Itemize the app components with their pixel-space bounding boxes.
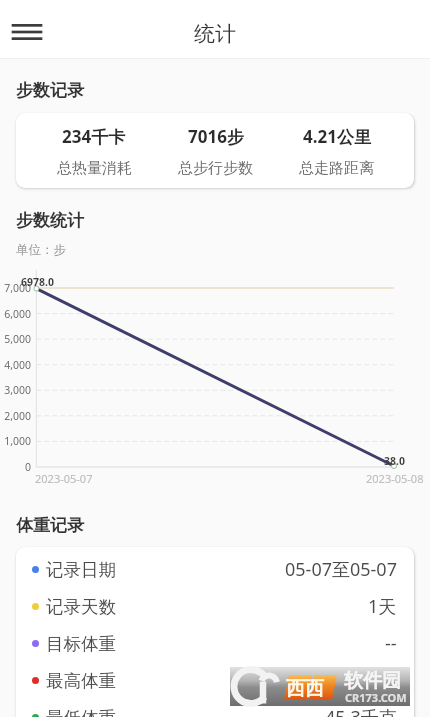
staticText: 05-07至05-07: [285, 557, 397, 582]
staticText: 单位：步: [16, 242, 66, 258]
staticText: 记录天数: [46, 596, 116, 618]
staticText: 45.3千克: [325, 705, 397, 717]
staticText: 6978.0: [21, 275, 54, 289]
staticText: 5,000: [0, 332, 31, 346]
button[interactable]: 记录天数: [16, 588, 414, 625]
staticText: 4,000: [0, 358, 31, 372]
staticText: 总走路距离: [299, 159, 374, 178]
button[interactable]: 234千卡: [33, 113, 155, 188]
button[interactable]: 最低体重: [16, 699, 414, 717]
staticText: 软件园: [344, 669, 401, 693]
staticText: 4.21公里: [303, 125, 371, 148]
staticText: 0: [0, 460, 31, 474]
staticText: --: [385, 631, 397, 656]
staticText: 最高体重: [46, 670, 116, 692]
staticText: 最低体重: [46, 707, 116, 717]
button[interactable]: 目标体重: [16, 625, 414, 662]
staticText: 38.0: [384, 454, 405, 468]
staticText: 总热量消耗: [57, 159, 132, 178]
button[interactable]: 最高体重: [16, 662, 414, 699]
staticText: CR173.COM: [345, 690, 407, 705]
staticText: 234千卡: [62, 125, 126, 148]
staticText: 统计: [194, 21, 236, 47]
button[interactable]: 4.21公里: [276, 113, 397, 188]
staticText: 45.3千克: [325, 668, 397, 693]
staticText: 记录日期: [46, 559, 116, 581]
button[interactable]: 7016步: [155, 113, 276, 188]
staticText: 3,000: [0, 383, 31, 397]
staticText: 步数统计: [16, 210, 84, 231]
staticText: 2023-05-07: [35, 471, 93, 486]
staticText: 2023-05-08: [366, 471, 424, 486]
staticText: 步数记录: [16, 80, 84, 101]
staticText: 目标体重: [46, 633, 116, 655]
button[interactable]: Menu: [0, 0, 430, 59]
staticText: 2,000: [0, 409, 31, 423]
staticText: 总步行步数: [178, 159, 253, 178]
staticText: 体重记录: [16, 515, 84, 536]
staticText: 7016步: [188, 125, 244, 148]
button[interactable]: 记录日期: [16, 551, 414, 588]
staticText: 7,000: [0, 281, 31, 295]
staticText: 1天: [368, 594, 397, 619]
staticText: 西西: [286, 677, 324, 701]
staticText: 1,000: [0, 434, 31, 448]
staticText: 6,000: [0, 307, 31, 321]
